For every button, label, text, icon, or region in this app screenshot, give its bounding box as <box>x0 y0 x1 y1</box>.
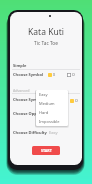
button[interactable]: Select X <box>48 72 56 77</box>
staticText: Easy <box>39 92 48 97</box>
button[interactable]: Hard <box>36 108 68 117</box>
button[interactable]: Medium <box>36 99 68 108</box>
staticText: Medium <box>39 101 55 106</box>
other: Select O <box>70 99 74 103</box>
staticText: O <box>72 72 75 77</box>
button[interactable]: Select O <box>67 72 75 77</box>
staticText: Advanced <box>13 88 30 93</box>
staticText: Choose Symbol <box>13 97 44 102</box>
staticText: Tic Tac Toe <box>10 40 82 47</box>
staticText: Choose Difficulty <box>13 130 47 135</box>
button[interactable]: Impossible <box>36 117 68 126</box>
other: Select X <box>48 73 52 77</box>
button[interactable]: Select O <box>70 98 78 103</box>
staticText: O <box>75 98 78 103</box>
staticText: Kata Kuti <box>10 26 82 38</box>
other: Select O <box>67 73 71 77</box>
staticText: Choose Symbol <box>13 72 44 77</box>
button[interactable]: Easy <box>36 90 68 99</box>
staticText: Impossible <box>39 119 60 124</box>
staticText: Simple <box>13 63 27 68</box>
staticText: Hard <box>39 110 49 115</box>
staticText: Choose Opponent <box>13 111 49 116</box>
staticText: Easy <box>49 130 58 135</box>
staticText: X <box>53 72 56 77</box>
staticText: START <box>41 148 52 153</box>
button[interactable]: START <box>32 146 60 155</box>
